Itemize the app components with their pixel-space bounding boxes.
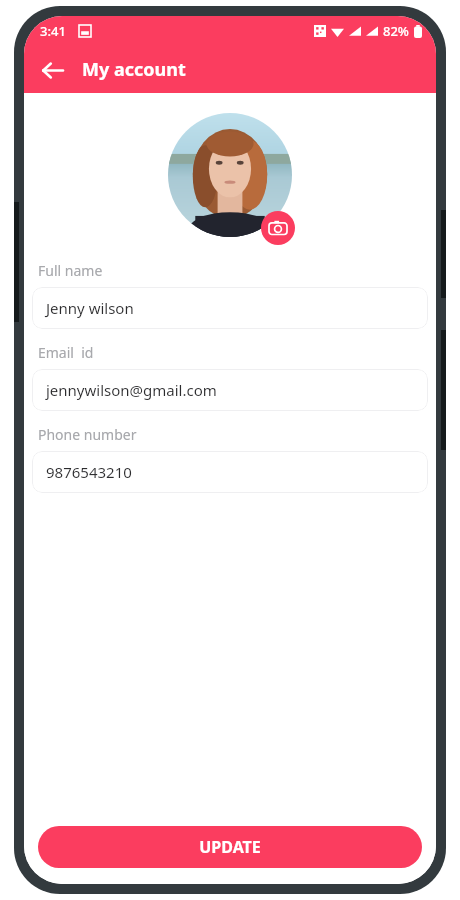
staticText: Email id [38, 343, 94, 362]
button[interactable]: 9876543210 [32, 451, 428, 493]
button[interactable]: jennywilson@gmail.com [32, 369, 428, 411]
staticText: Phone number [38, 425, 137, 444]
button[interactable]: Back [30, 48, 74, 92]
staticText: 82% [383, 22, 409, 40]
staticText: 9876543210 [46, 462, 132, 482]
staticText: My account [82, 57, 186, 82]
button[interactable]: UPDATE [38, 826, 422, 868]
staticText: Jenny wilson [46, 298, 134, 318]
button[interactable]: Change photo [261, 211, 295, 245]
staticText: jennywilson@gmail.com [46, 380, 217, 400]
staticText: UPDATE [199, 836, 261, 858]
staticText: Full name [38, 261, 103, 280]
button[interactable]: Jenny wilson [32, 287, 428, 329]
button[interactable]: Profile photo [168, 113, 292, 237]
staticText: 3:41 [40, 22, 66, 40]
